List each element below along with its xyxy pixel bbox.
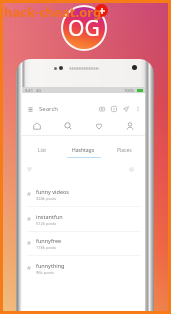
- staticText: Places: [117, 147, 132, 154]
- staticText: 4G: [36, 88, 42, 93]
- staticText: Hashtags: [72, 147, 95, 154]
- staticText: 512k posts: [36, 221, 57, 226]
- staticText: 9:41: [25, 88, 33, 93]
- staticText: #: [27, 190, 31, 198]
- button[interactable]: Add: [95, 4, 108, 17]
- staticText: funnyfree: [36, 237, 62, 244]
- staticText: 100%: [124, 88, 135, 93]
- staticText: Search: [39, 105, 58, 113]
- staticText: 324k posts: [36, 196, 57, 201]
- staticText: #: [27, 239, 31, 247]
- staticText: OG: [68, 14, 100, 43]
- staticText: 96k posts: [36, 270, 54, 275]
- staticText: #: [27, 215, 31, 223]
- staticText: instantfun: [36, 213, 63, 220]
- button[interactable]: Menu: [25, 104, 35, 114]
- button[interactable]: Home: [22, 118, 52, 134]
- staticText: List: [38, 147, 47, 154]
- staticText: #: [27, 264, 31, 272]
- staticText: hack-cheat.org: [4, 3, 102, 21]
- button[interactable]: #: [22, 182, 145, 206]
- button[interactable]: Send: [121, 104, 131, 114]
- button[interactable]: More: [133, 104, 143, 114]
- staticText: funny videos: [36, 188, 69, 195]
- staticText: funnything: [36, 262, 65, 269]
- button[interactable]: #: [22, 256, 145, 280]
- button[interactable]: #: [22, 207, 145, 231]
- button[interactable]: Hashtags: [63, 143, 104, 159]
- button[interactable]: Search: [52, 118, 83, 134]
- button[interactable]: List: [22, 143, 63, 159]
- button[interactable]: Activity: [83, 118, 114, 134]
- staticText: 118k posts: [36, 245, 57, 250]
- button[interactable]: #: [22, 231, 145, 255]
- button[interactable]: Profile: [114, 118, 145, 134]
- button[interactable]: Camera: [97, 104, 107, 114]
- button[interactable]: IGTV: [109, 104, 119, 114]
- button[interactable]: Places: [104, 143, 145, 159]
